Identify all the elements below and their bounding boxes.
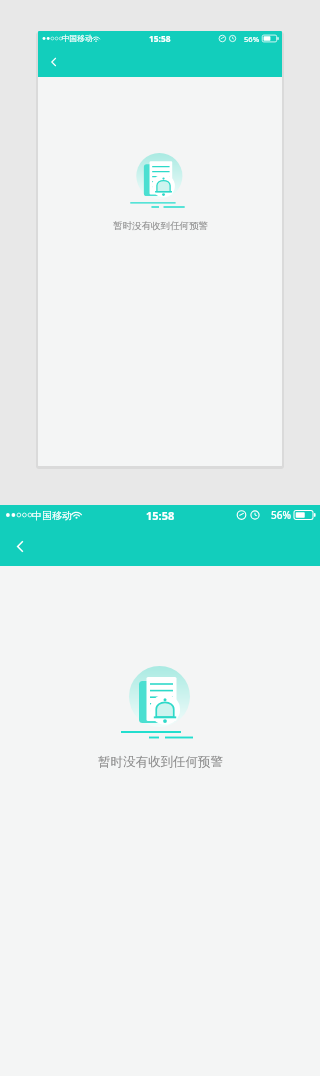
staticText: 56% [271,508,291,522]
button[interactable]: Back [39,47,68,76]
staticText: 15:58 [149,33,171,44]
staticText: 暂时没有收到任何预警 [113,220,208,232]
staticText: 15:58 [146,508,175,523]
staticText: 中国移动 [62,34,93,44]
staticText: 中国移动 [32,509,72,522]
staticText: 暂时没有收到任何预警 [98,754,223,770]
staticText: 56% [244,34,260,44]
button[interactable]: Back [1,527,39,565]
